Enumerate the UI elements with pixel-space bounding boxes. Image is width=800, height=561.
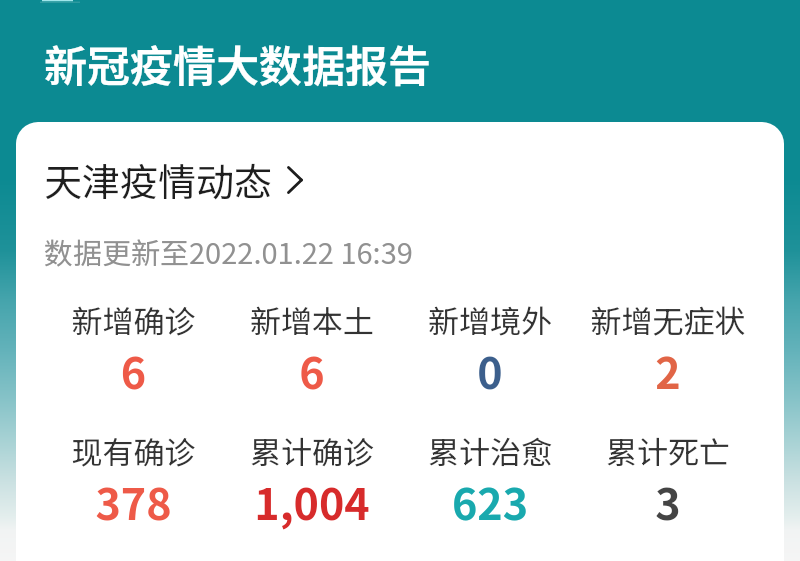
button[interactable]: 累计确诊 <box>223 428 401 528</box>
other: 查看详情 <box>287 166 303 194</box>
staticText: 天津疫情动态 <box>44 152 273 207</box>
staticText: 6 <box>223 339 401 401</box>
staticText: 数据更新至2022.01.22 16:39 <box>44 230 413 272</box>
staticText: 累计死亡 <box>579 428 757 473</box>
staticText: 新增确诊 <box>44 297 223 342</box>
staticText: 623 <box>401 470 579 532</box>
button[interactable]: 现有确诊 <box>44 428 223 528</box>
staticText: 新增本土 <box>223 297 401 342</box>
button[interactable]: 新增境外 <box>401 297 579 397</box>
staticText: 累计确诊 <box>223 428 401 473</box>
staticText: 378 <box>44 470 223 532</box>
button[interactable]: 天津疫情动态 <box>16 150 784 209</box>
button[interactable]: 新增本土 <box>223 297 401 397</box>
staticText: 现有确诊 <box>44 428 223 473</box>
staticText: 2 <box>579 339 757 401</box>
button[interactable]: 新增无症状 <box>579 297 757 397</box>
button[interactable]: 新增确诊 <box>44 297 223 397</box>
staticText: 0 <box>401 339 579 401</box>
staticText: 1,004 <box>223 470 401 532</box>
staticText: 3 <box>579 470 757 532</box>
button[interactable]: 累计治愈 <box>401 428 579 528</box>
staticText: 新冠疫情大数据报告 <box>44 32 431 94</box>
staticText: 新增境外 <box>401 297 579 342</box>
staticText: 累计治愈 <box>401 428 579 473</box>
staticText: 6 <box>44 339 223 401</box>
staticText: 新增无症状 <box>579 297 757 342</box>
button[interactable]: 累计死亡 <box>579 428 757 528</box>
